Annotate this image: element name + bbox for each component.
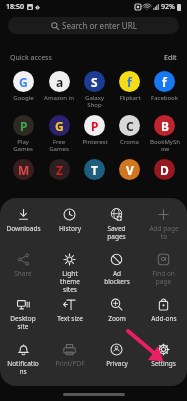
staticText: Print/PDF [55, 359, 85, 368]
staticText: f [162, 74, 167, 90]
staticText: 18:50 [6, 2, 24, 12]
staticText: Pinterest [82, 138, 108, 146]
button[interactable]: Z [41, 159, 77, 180]
staticText: Quick access [10, 53, 52, 63]
staticText: Facebook [151, 94, 178, 102]
staticText: 92% [161, 2, 175, 12]
staticText: T [91, 162, 98, 178]
button[interactable]: T [77, 159, 112, 180]
button[interactable]: Share [0, 250, 46, 295]
button[interactable]: Zoom [93, 295, 140, 340]
button[interactable]: Add pageto [140, 205, 187, 250]
button[interactable]: Find onpage [140, 250, 187, 295]
button[interactable]: Desktopsite [0, 295, 46, 340]
staticText: G [19, 74, 28, 90]
staticText: P [91, 118, 99, 134]
button[interactable]: Notifications [0, 340, 46, 385]
button[interactable]: G [5, 71, 41, 102]
staticText: Galaxy Shop [85, 94, 104, 109]
button[interactable]: History [46, 205, 93, 250]
button[interactable]: a [41, 71, 77, 102]
button[interactable]: Search or enter URL [8, 17, 179, 34]
staticText: Flipkart [119, 94, 141, 102]
staticText: Settings [151, 359, 176, 368]
staticText: Amazon in [44, 94, 74, 102]
staticText: Share [14, 269, 32, 278]
staticText: Z [56, 162, 63, 178]
button[interactable]: Adblockers [93, 250, 140, 295]
staticText: D [160, 162, 169, 178]
button[interactable]: P [5, 115, 41, 153]
staticText: Add page to [149, 224, 179, 241]
staticText: Ad blockers [104, 269, 130, 286]
staticText: History [59, 224, 81, 233]
staticText: Free Games [49, 138, 69, 153]
button[interactable]: P [77, 115, 112, 146]
button[interactable]: Edit [164, 53, 177, 63]
button[interactable]: f [147, 71, 182, 102]
staticText: a [56, 74, 64, 90]
staticText: Text size [57, 314, 83, 323]
staticText: Notificatio ns [7, 359, 39, 376]
staticText: Croma [120, 138, 139, 146]
staticText: B [161, 118, 169, 134]
button[interactable]: Print/PDF [46, 340, 93, 385]
button[interactable]: G [41, 115, 77, 153]
staticText: Google [13, 94, 34, 102]
button[interactable]: Savedpages [93, 205, 140, 250]
staticText: Downloads [6, 224, 41, 233]
staticText: M [18, 162, 30, 178]
button[interactable]: D [147, 159, 182, 180]
staticText: Edit [164, 53, 177, 63]
staticText: Zoom [108, 314, 126, 323]
staticText: Play Games [13, 138, 33, 153]
staticText: f [127, 74, 132, 90]
staticText: Add-ons [151, 314, 177, 323]
staticText: Find on page [152, 269, 175, 286]
staticText: S [91, 74, 98, 90]
button[interactable]: Lightthemesites [46, 250, 93, 295]
staticText: Saved pages [107, 224, 126, 241]
staticText: Privacy [106, 359, 128, 368]
staticText: G [55, 118, 64, 134]
button[interactable]: Text size [46, 295, 93, 340]
button[interactable]: V [112, 159, 147, 180]
staticText: C [126, 118, 134, 134]
button[interactable]: M [5, 159, 41, 180]
button[interactable]: S [77, 71, 112, 109]
button[interactable]: f [112, 71, 147, 102]
staticText: Search or enter URL [62, 20, 137, 31]
button[interactable]: Add-ons [140, 295, 187, 340]
button[interactable]: Downloads [0, 205, 46, 250]
button[interactable]: Privacy [93, 340, 140, 385]
staticText: Desktop site [10, 314, 36, 331]
staticText: BookMySh ow [150, 138, 180, 153]
staticText: P [20, 118, 28, 134]
staticText: V [126, 162, 134, 178]
staticText: Light theme sites [60, 269, 80, 294]
button[interactable]: B [147, 115, 182, 153]
button[interactable]: Settings [140, 340, 187, 385]
button[interactable]: C [112, 115, 147, 146]
